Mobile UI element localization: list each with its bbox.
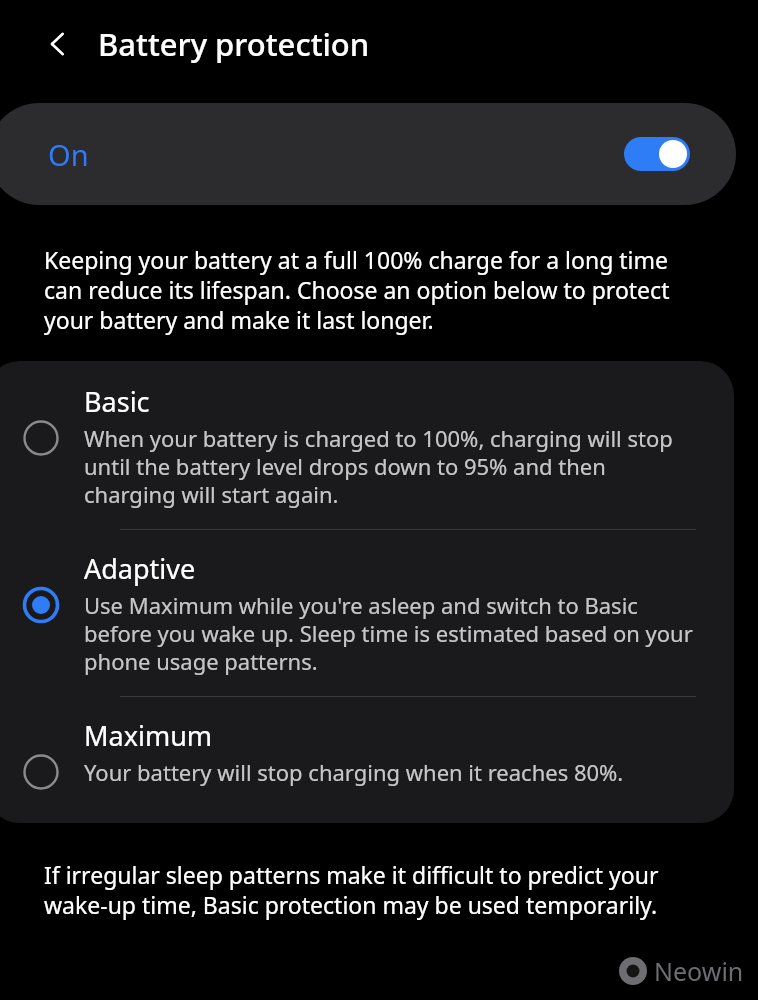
staticText: Neowin (654, 954, 744, 988)
staticText: Basic (84, 383, 150, 420)
staticText: If irregular sleep patterns make it diff… (44, 859, 724, 920)
button[interactable]: Back (30, 16, 86, 72)
button[interactable]: Maximum (0, 697, 734, 823)
staticText: When your battery is charged to 100%, ch… (84, 423, 696, 509)
staticText: Maximum (84, 717, 213, 754)
button[interactable]: Adaptive (0, 530, 734, 696)
staticText: On (48, 135, 89, 174)
button[interactable]: Basic (0, 361, 734, 529)
staticText: Battery protection (98, 23, 370, 65)
staticText: Keeping your battery at a full 100% char… (44, 244, 706, 335)
button[interactable]: On (0, 103, 736, 205)
staticText: Adaptive (84, 550, 196, 587)
staticText: Use Maximum while you're asleep and swit… (84, 590, 696, 676)
button[interactable]: Battery protection on (624, 137, 690, 171)
staticText: Your battery will stop charging when it … (84, 757, 624, 787)
